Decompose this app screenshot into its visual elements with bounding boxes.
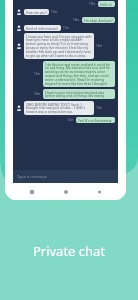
button[interactable]: Recents (25, 185, 39, 199)
staticText: Yes! It's so frustrating. (78, 118, 113, 122)
button[interactable]: 18m (16, 17, 115, 23)
staticText: OMG BEFORE EATING TOO!!! Gosh, I thought… (26, 102, 92, 114)
button[interactable]: 12m (16, 117, 115, 123)
staticText: Hello 😊 (100, 2, 113, 6)
staticText: Kind of rollercoaster! (26, 26, 59, 30)
staticText: 18m (73, 18, 80, 22)
button[interactable]: 14m (16, 89, 115, 99)
staticText: How are you? (26, 10, 47, 14)
button[interactable]: I know you have ocd. Do you struggle wit… (16, 33, 115, 59)
staticText: I'm okay. And you? (84, 18, 113, 22)
button[interactable]: 15m (16, 61, 115, 87)
staticText: I have to pee a lot before bed and also … (45, 90, 113, 98)
staticText: I know you have ocd. Do you struggle wit… (26, 34, 92, 58)
button[interactable]: Kind of rollercoaster! (16, 25, 115, 31)
staticText: Private chat (0, 242, 138, 260)
staticText: 17m (63, 26, 70, 30)
staticText: 13m (96, 106, 103, 110)
staticText: 19m (51, 10, 58, 14)
staticText: I do this too and never realized it coul… (45, 62, 113, 86)
staticText: 12m (67, 118, 74, 122)
staticText: 16m (96, 44, 103, 48)
button[interactable]: How are you? (16, 9, 115, 15)
staticText: 14m (34, 92, 41, 96)
staticText: Type a message (17, 174, 48, 179)
button[interactable]: Home (59, 185, 73, 199)
button[interactable]: OMG BEFORE EATING TOO!!! Gosh, I thought… (16, 101, 115, 115)
button[interactable]: 19m (16, 1, 115, 7)
staticText: 15m (34, 72, 41, 76)
button[interactable]: Type a message (13, 170, 118, 183)
button[interactable]: Back (92, 185, 106, 199)
staticText: 19m (89, 2, 96, 6)
